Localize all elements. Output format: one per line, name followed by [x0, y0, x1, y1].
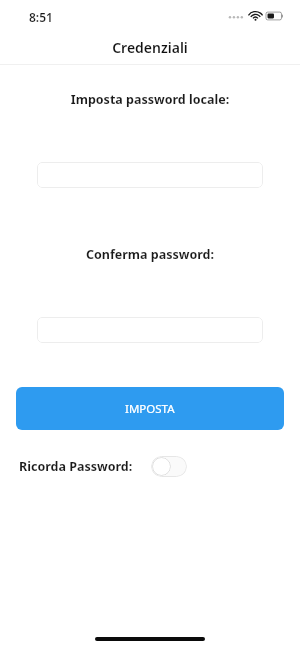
button[interactable]: IMPOSTA	[16, 387, 284, 430]
button[interactable]	[37, 162, 263, 188]
staticText: Imposta password locale:	[0, 91, 300, 108]
button[interactable]: Ricorda Password toggle	[151, 456, 187, 477]
staticText: Conferma password:	[0, 246, 300, 263]
staticText: IMPOSTA	[125, 401, 175, 417]
button[interactable]	[37, 317, 263, 343]
staticText: Credenziali	[112, 38, 188, 57]
staticText: Ricorda Password:	[19, 458, 133, 475]
staticText: 8:51	[29, 9, 53, 25]
